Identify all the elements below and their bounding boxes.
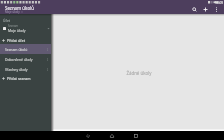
- button[interactable]: Přidat účet: [0, 36, 51, 45]
- button[interactable]: Home: [109, 133, 115, 139]
- button[interactable]: Search: [189, 5, 200, 14]
- staticText: Seznam úkolů: [5, 5, 34, 11]
- staticText: Seznam: [8, 24, 18, 28]
- staticText: Moje úkoly: [8, 28, 26, 33]
- staticText: Dokončené úkoly: [5, 57, 46, 62]
- staticText: Seznam úkolů: [5, 47, 46, 52]
- staticText: Přidat účet: [7, 38, 26, 43]
- button[interactable]: Recent apps: [133, 133, 139, 139]
- staticText: Všechny úkoly: [5, 67, 46, 72]
- staticText: Účet: [3, 18, 11, 22]
- button[interactable]: Seznam úkolů: [0, 44, 51, 54]
- button[interactable]: Všechny úkoly: [0, 64, 51, 74]
- staticText: 14:09: [215, 1, 224, 5]
- button[interactable]: More options: [211, 5, 222, 14]
- button[interactable]: Přidat seznam: [0, 74, 51, 83]
- staticText: Žádné úkoly: [126, 70, 152, 76]
- staticText: Moje úkoly: [5, 10, 20, 14]
- button[interactable]: Seznam: [0, 23, 51, 33]
- button[interactable]: Add task: [200, 5, 211, 14]
- button[interactable]: Back: [85, 133, 91, 139]
- button[interactable]: Dokončené úkoly: [0, 54, 51, 64]
- staticText: Přidat seznam: [7, 76, 31, 81]
